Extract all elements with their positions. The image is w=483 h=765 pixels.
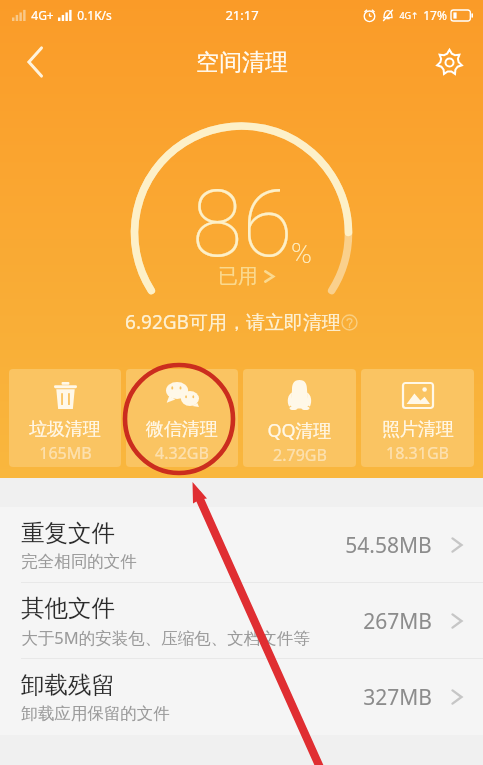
staticText: 0.1K/s: [77, 7, 112, 23]
staticText: 微信清理: [146, 418, 218, 441]
button[interactable]: 微信清理: [126, 369, 238, 467]
staticText: 327MB: [363, 683, 432, 712]
staticText: 卸载应用保留的文件: [21, 703, 170, 724]
button[interactable]: Back: [11, 38, 59, 86]
staticText: 4G+: [31, 7, 54, 23]
button[interactable]: 卸载残留: [0, 659, 483, 735]
staticText: 21:17: [225, 6, 259, 24]
staticText: 4.32GB: [155, 442, 209, 464]
staticText: 86: [192, 171, 293, 279]
staticText: 卸载残留: [21, 670, 115, 700]
staticText: 已用: [218, 264, 258, 289]
staticText: 其他文件: [21, 593, 115, 623]
staticText: 完全相同的文件: [21, 551, 137, 572]
button[interactable]: QQ清理: [243, 369, 356, 467]
button[interactable]: 照片清理: [361, 369, 474, 467]
staticText: 空间清理: [196, 48, 288, 77]
button[interactable]: Settings: [425, 38, 473, 86]
button[interactable]: 重复文件: [0, 507, 483, 583]
button[interactable]: 垃圾清理: [9, 369, 121, 467]
staticText: %: [291, 237, 312, 270]
staticText: 165MB: [39, 442, 92, 464]
staticText: 54.58MB: [345, 531, 432, 560]
staticText: 2.79GB: [273, 444, 327, 466]
staticText: 垃圾清理: [29, 418, 101, 441]
button[interactable]: 其他文件: [0, 583, 483, 659]
staticText: 6.92GB可用，请立即清理: [125, 309, 341, 335]
staticText: 大于5M的安装包、压缩包、文档文件等: [21, 626, 310, 649]
staticText: 4G↑: [399, 9, 419, 21]
staticText: QQ清理: [267, 418, 332, 443]
staticText: 照片清理: [382, 418, 454, 441]
staticText: 18.31GB: [386, 442, 449, 464]
staticText: 267MB: [363, 607, 432, 636]
button[interactable]: 已用: [218, 264, 277, 289]
staticText: 17%: [423, 7, 447, 23]
staticText: 重复文件: [21, 518, 115, 548]
